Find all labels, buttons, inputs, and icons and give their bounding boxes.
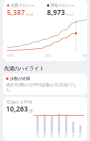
staticText: kcal	[26, 11, 33, 17]
staticText: kcal	[66, 11, 73, 17]
staticText: 過去7日間の1日平均歩数は10,263歩でした。	[6, 82, 77, 92]
staticText: 8,973	[47, 8, 65, 17]
staticText: 9/6	[82, 53, 87, 58]
staticText: 月	[50, 133, 54, 138]
staticText: 月	[36, 133, 40, 138]
staticText: 摂取カロリー	[50, 3, 74, 8]
staticText: 歩	[29, 108, 33, 113]
button[interactable]: 1日あたり平均	[3, 97, 87, 141]
staticText: 1日あたり平均	[6, 99, 32, 105]
staticText: 月	[78, 133, 82, 138]
staticText: 月	[71, 133, 75, 138]
button[interactable]: 歩数が好調	[3, 74, 87, 95]
staticText: 月	[43, 133, 47, 138]
staticText: 10,263	[6, 105, 28, 113]
staticText: 8/30	[7, 53, 14, 58]
staticText: 先週のハイライト	[4, 65, 44, 72]
staticText: 月	[57, 133, 61, 138]
staticText: 消費カロリー	[10, 3, 34, 8]
staticText: 歩数が好調	[10, 76, 30, 81]
staticText: 9/3	[45, 53, 50, 58]
staticText: 月	[64, 133, 68, 138]
staticText: 5,387	[7, 8, 25, 17]
